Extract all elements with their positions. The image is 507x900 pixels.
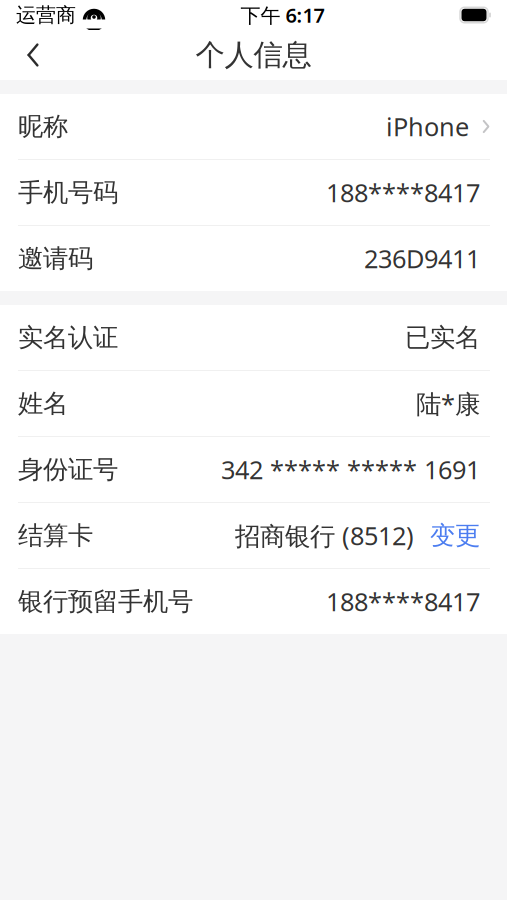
staticText: 身份证号 bbox=[18, 454, 118, 485]
staticText: 188****8417 bbox=[326, 585, 480, 618]
staticText: 招商银行 (8512) bbox=[235, 519, 414, 552]
staticText: 变更 bbox=[430, 520, 480, 551]
staticText: 运营商 bbox=[16, 3, 76, 27]
staticText: 已实名 bbox=[405, 322, 480, 353]
staticText: 个人信息 bbox=[195, 37, 311, 73]
staticText: 邀请码 bbox=[18, 243, 93, 274]
button[interactable]: 返回 bbox=[10, 30, 56, 80]
staticText: 结算卡 bbox=[18, 520, 93, 551]
staticText: 陆*康 bbox=[416, 387, 480, 420]
staticText: 188****8417 bbox=[326, 176, 480, 209]
staticText: 昵称 bbox=[18, 111, 68, 142]
button[interactable]: 银行预留手机号 bbox=[0, 569, 507, 634]
button[interactable]: 实名认证 bbox=[0, 305, 507, 370]
staticText: 236D9411 bbox=[364, 242, 480, 275]
staticText: 手机号码 bbox=[18, 177, 118, 208]
button[interactable]: 结算卡 bbox=[0, 503, 507, 568]
button[interactable]: 昵称 bbox=[0, 94, 507, 159]
staticText: iPhone bbox=[386, 110, 469, 143]
staticText: 姓名 bbox=[18, 388, 68, 419]
button[interactable]: 邀请码 bbox=[0, 226, 507, 291]
staticText: 实名认证 bbox=[18, 322, 118, 353]
button[interactable]: 身份证号 bbox=[0, 437, 507, 502]
staticText: 银行预留手机号 bbox=[18, 586, 193, 617]
button[interactable]: 手机号码 bbox=[0, 160, 507, 225]
button[interactable]: 姓名 bbox=[0, 371, 507, 436]
staticText: 342 ***** ***** 1691 bbox=[221, 453, 480, 486]
staticText: 下午 6:17 bbox=[240, 2, 324, 28]
